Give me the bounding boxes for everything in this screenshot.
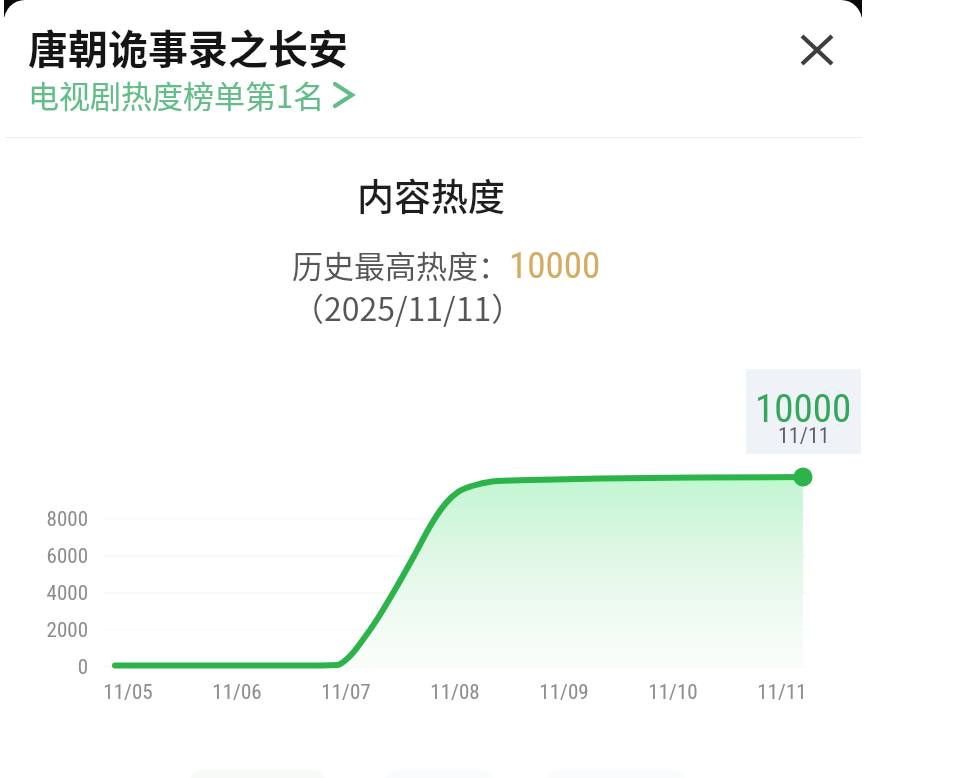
button[interactable]: Close <box>787 20 847 80</box>
staticText: 内容热度 <box>357 168 505 222</box>
staticText: （2025/11/11） <box>292 284 524 330</box>
staticText: 11/08 <box>405 680 505 705</box>
staticText: 11/10 <box>623 680 723 705</box>
button[interactable]: 电视剧热度榜单第1名 <box>28 72 355 117</box>
staticText: 11/11 <box>778 423 830 445</box>
button[interactable]: 10000 <box>746 369 861 454</box>
staticText: 6000 <box>38 544 88 569</box>
staticText: 8000 <box>38 507 88 532</box>
staticText: 0 <box>38 655 88 680</box>
staticText: 10000 <box>509 244 601 287</box>
staticText: 历史最高热度： <box>292 242 509 287</box>
staticText: 4000 <box>38 581 88 606</box>
staticText: 10000 <box>755 386 852 432</box>
staticText: 唐朝诡事录之长安 <box>28 18 348 76</box>
staticText: 11/06 <box>187 680 287 705</box>
staticText: 电视剧热度榜单第1名 <box>28 72 325 117</box>
staticText: 11/05 <box>78 680 178 705</box>
staticText: 11/09 <box>514 680 614 705</box>
staticText: 11/11 <box>732 680 832 705</box>
staticText: 2000 <box>38 618 88 643</box>
staticText: 11/07 <box>296 680 396 705</box>
